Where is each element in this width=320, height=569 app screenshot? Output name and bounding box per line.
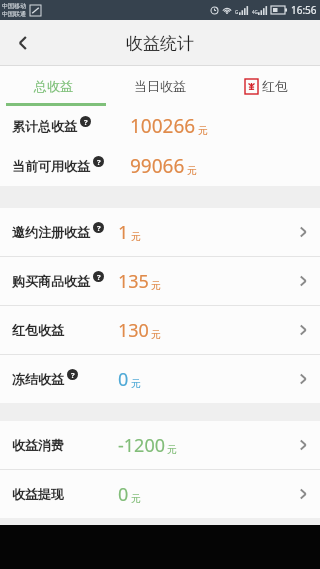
staticText: 当前可用收益 [12, 158, 90, 174]
staticText: 邀约注册收益 [12, 224, 90, 240]
button[interactable]: 累计总收益 [0, 106, 320, 146]
staticText: 1 [118, 220, 129, 245]
staticText: ? [97, 272, 101, 282]
staticText: ? [97, 223, 101, 233]
button[interactable]: 红包收益 [0, 306, 320, 354]
button[interactable]: 当日收益 [106, 66, 213, 106]
staticText: 元 [131, 377, 141, 390]
button[interactable]: 邀约注册收益 [0, 208, 320, 256]
staticText: 元 [151, 279, 161, 292]
button[interactable]: 冻结收益 [0, 355, 320, 403]
staticText: 冻结收益 [12, 371, 64, 387]
staticText: 元 [151, 328, 161, 341]
staticText: -1200 [118, 433, 165, 458]
button[interactable]: 收益提现 [0, 470, 320, 518]
button[interactable]: Back [0, 20, 46, 66]
staticText: 0 [118, 482, 129, 507]
staticText: 收益消费 [12, 437, 64, 453]
staticText: 中国移动 [2, 2, 26, 10]
staticText: 130 [118, 318, 149, 343]
staticText: 当日收益 [134, 78, 186, 94]
staticText: 元 [131, 230, 141, 243]
staticText: 红包 [262, 78, 288, 94]
staticText: 购买商品收益 [12, 273, 90, 289]
staticText: 元 [167, 443, 177, 456]
staticText: 中国联通 [2, 10, 26, 18]
button[interactable]: 总收益 [0, 66, 106, 106]
staticText: 收益统计 [126, 33, 194, 54]
staticText: 4G [252, 9, 258, 15]
staticText: 16:56 [291, 3, 317, 17]
button[interactable]: 收益消费 [0, 421, 320, 469]
staticText: 元 [198, 124, 208, 137]
staticText: 135 [118, 269, 149, 294]
staticText: ? [71, 370, 75, 380]
staticText: 100266 [130, 113, 196, 139]
staticText: G [235, 9, 239, 15]
button[interactable]: 红包 [213, 66, 320, 106]
staticText: 元 [131, 492, 141, 505]
staticText: 累计总收益 [12, 118, 77, 134]
staticText: ? [97, 157, 101, 167]
staticText: 收益提现 [12, 486, 64, 502]
staticText: 99066 [130, 153, 185, 179]
button[interactable]: 购买商品收益 [0, 257, 320, 305]
staticText: 红包收益 [12, 322, 64, 338]
button[interactable]: 当前可用收益 [0, 146, 320, 186]
staticText: ? [84, 117, 88, 127]
staticText: 总收益 [34, 78, 73, 94]
staticText: 0 [118, 367, 129, 392]
staticText: 元 [187, 164, 197, 177]
